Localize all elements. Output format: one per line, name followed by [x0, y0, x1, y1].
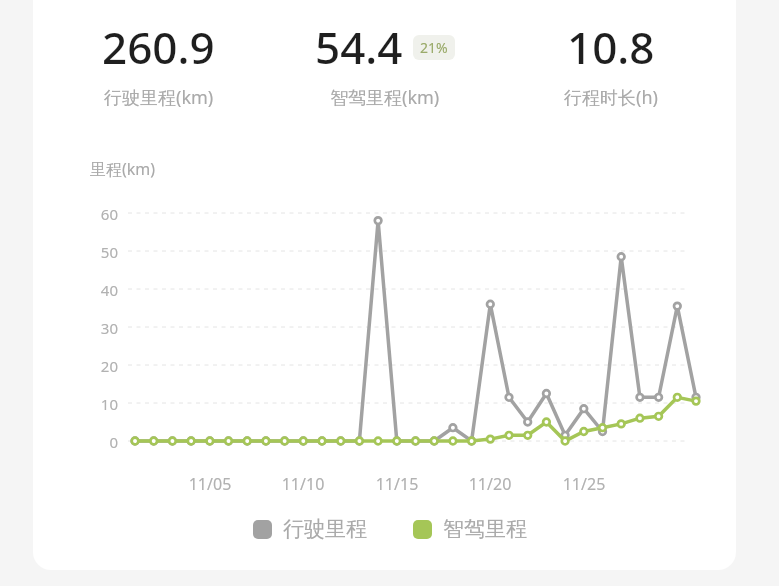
staticText: 260.9 — [102, 17, 215, 77]
staticText: 30 — [86, 318, 118, 338]
staticText: 20 — [86, 356, 118, 376]
button[interactable]: 54.4 — [272, 17, 498, 110]
staticText: 11/05 — [178, 473, 242, 495]
staticText: 11/15 — [365, 473, 429, 495]
staticText: 行程时长(h) — [564, 85, 658, 110]
staticText: 60 — [86, 204, 118, 224]
staticText: 50 — [86, 242, 118, 262]
staticText: 40 — [86, 280, 118, 300]
button[interactable]: 行驶里程 — [253, 516, 367, 542]
staticText: 11/20 — [458, 473, 522, 495]
staticText: 11/25 — [552, 473, 616, 495]
staticText: 10.8 — [567, 17, 655, 77]
button[interactable]: 10.8 — [498, 17, 724, 110]
staticText: 10 — [86, 394, 118, 414]
button[interactable]: 智驾里程 — [413, 516, 527, 542]
staticText: 行驶里程(km) — [104, 85, 214, 110]
button[interactable]: 260.9 — [45, 17, 272, 110]
staticText: 11/10 — [271, 473, 335, 495]
staticText: 行驶里程 — [283, 516, 367, 542]
staticText: 21% — [420, 38, 448, 57]
staticText: 智驾里程 — [443, 516, 527, 542]
staticText: 0 — [86, 432, 118, 452]
staticText: 里程(km) — [90, 158, 156, 180]
staticText: 智驾里程(km) — [330, 85, 440, 110]
staticText: 54.4 — [315, 17, 403, 77]
